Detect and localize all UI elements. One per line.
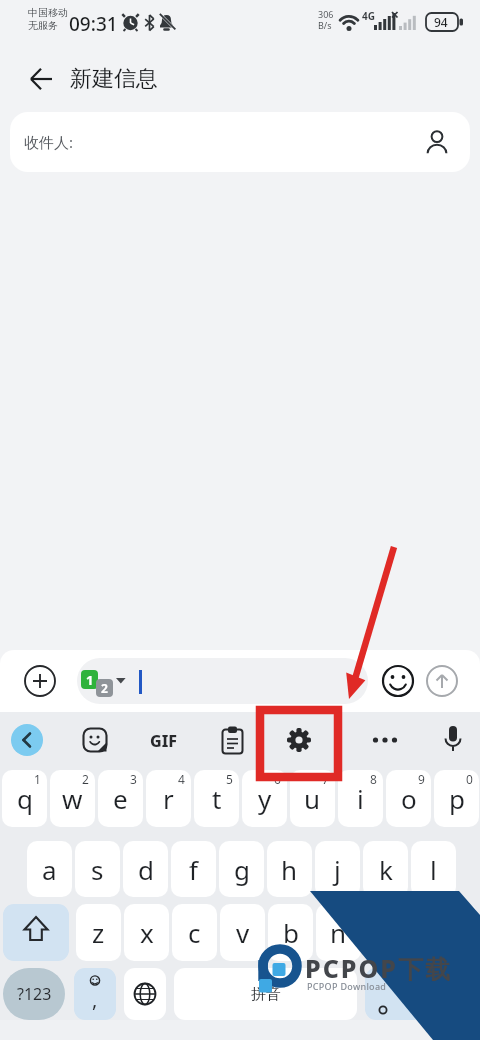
button[interactable]: [443, 725, 463, 756]
button[interactable]: n: [316, 904, 361, 961]
button[interactable]: j: [315, 841, 360, 897]
button[interactable]: ?123: [3, 968, 65, 1020]
staticText: 8: [370, 771, 377, 787]
button[interactable]: x: [124, 904, 169, 961]
staticText: a: [42, 852, 57, 887]
button[interactable]: [3, 904, 69, 961]
staticText: n: [330, 915, 347, 950]
staticText: x: [140, 915, 154, 950]
button[interactable]: q: [2, 770, 47, 827]
staticText: b: [283, 915, 299, 950]
staticText: 中国移动: [28, 6, 68, 19]
staticText: v: [236, 915, 250, 950]
staticText: z: [92, 915, 105, 950]
staticText: h: [281, 852, 298, 887]
button[interactable]: u: [290, 770, 335, 827]
staticText: 收件人:: [24, 132, 74, 152]
button[interactable]: [81, 726, 109, 754]
staticText: PCPOP Download: [307, 980, 387, 992]
staticText: d: [138, 852, 154, 887]
staticText: 306: [318, 8, 334, 20]
button[interactable]: l: [411, 841, 456, 897]
staticText: l: [430, 852, 437, 887]
button[interactable]: z: [76, 904, 121, 961]
staticText: 9: [418, 771, 425, 787]
button[interactable]: ,: [74, 968, 116, 1020]
button[interactable]: c: [172, 904, 217, 961]
button[interactable]: p: [434, 770, 479, 827]
button[interactable]: i: [338, 770, 383, 827]
staticText: 2: [82, 771, 89, 787]
staticText: 3: [130, 771, 137, 787]
staticText: 6: [274, 771, 281, 787]
staticText: s: [91, 852, 104, 887]
staticText: B/s: [318, 19, 332, 31]
staticText: PCPOP下载: [305, 951, 452, 985]
button[interactable]: 收件人:: [10, 112, 470, 172]
staticText: 7: [322, 771, 329, 787]
staticText: o: [401, 781, 417, 816]
button[interactable]: e: [98, 770, 143, 827]
staticText: GIF: [150, 730, 178, 752]
staticText: e: [113, 781, 128, 816]
staticText: 0: [466, 771, 473, 787]
staticText: 4G: [362, 9, 375, 23]
button[interactable]: g: [219, 841, 264, 897]
staticText: ?123: [17, 983, 52, 1005]
staticText: i: [357, 781, 364, 816]
button[interactable]: 1: [77, 658, 368, 704]
button[interactable]: [382, 665, 414, 697]
staticText: 2: [101, 680, 108, 696]
button[interactable]: [285, 726, 313, 754]
staticText: f: [189, 852, 198, 887]
button[interactable]: k: [363, 841, 408, 897]
button[interactable]: [365, 968, 425, 1020]
staticText: t: [212, 781, 222, 816]
button[interactable]: d: [123, 841, 168, 897]
staticText: g: [234, 852, 250, 887]
staticText: p: [449, 781, 465, 816]
button[interactable]: [426, 665, 458, 697]
button[interactable]: t: [194, 770, 239, 827]
button[interactable]: m: [364, 904, 409, 961]
staticText: 新建信息: [70, 65, 158, 93]
button[interactable]: [124, 968, 166, 1020]
staticText: 4: [178, 771, 185, 787]
button[interactable]: [24, 665, 56, 697]
staticText: y: [258, 781, 272, 816]
staticText: 09:31: [69, 11, 118, 37]
button[interactable]: a: [27, 841, 72, 897]
button[interactable]: b: [268, 904, 313, 961]
button[interactable]: w: [50, 770, 95, 827]
button[interactable]: o: [386, 770, 431, 827]
staticText: 94: [434, 14, 448, 30]
staticText: ,: [92, 986, 98, 1013]
staticText: 拼音: [251, 985, 281, 1004]
button[interactable]: v: [220, 904, 265, 961]
staticText: r: [163, 781, 174, 816]
staticText: j: [334, 852, 341, 887]
button[interactable]: [11, 724, 43, 756]
button[interactable]: [20, 66, 62, 94]
staticText: k: [379, 852, 393, 887]
staticText: c: [188, 915, 201, 950]
staticText: q: [17, 781, 33, 816]
button[interactable]: [221, 726, 245, 755]
button[interactable]: f: [171, 841, 216, 897]
staticText: u: [304, 781, 321, 816]
button[interactable]: [433, 968, 477, 1020]
button[interactable]: s: [75, 841, 120, 897]
staticText: 1: [86, 671, 94, 689]
button[interactable]: 拼音: [174, 968, 357, 1020]
button[interactable]: h: [267, 841, 312, 897]
staticText: 5: [226, 771, 233, 787]
button[interactable]: GIF: [150, 730, 188, 752]
staticText: w: [62, 781, 83, 816]
button[interactable]: [372, 736, 398, 744]
staticText: 无服务: [28, 19, 58, 32]
button[interactable]: [412, 904, 477, 961]
staticText: 1: [34, 771, 41, 787]
button[interactable]: r: [146, 770, 191, 827]
button[interactable]: y: [242, 770, 287, 827]
